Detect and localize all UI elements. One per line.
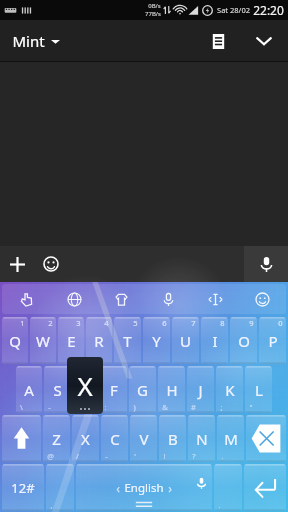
staticText: 2 [48,318,53,328]
staticText: K [225,380,235,400]
staticText: M [224,429,238,449]
staticText: S [53,380,62,400]
button[interactable]: C [101,415,128,462]
button[interactable]: S [44,366,70,413]
staticText: N [196,429,208,449]
staticText: + [76,402,81,412]
button[interactable]: Collapse [240,20,288,62]
staticText: Q [9,331,21,351]
staticText: - [48,402,51,412]
staticText: \ [20,402,23,412]
button[interactable]: Shift [2,415,41,462]
staticText: U [180,331,191,351]
staticText: B [168,429,178,449]
staticText: 8 [220,318,225,328]
button[interactable]: A [16,366,42,413]
staticText: ? [192,451,196,461]
staticText: # [191,402,196,412]
button[interactable]: Enter [244,464,286,511]
staticText: Mint [12,31,45,51]
staticText: O [238,331,250,351]
staticText: . [218,500,221,510]
staticText: C [110,429,120,449]
staticText: ; [220,402,223,412]
staticText: G [137,380,148,400]
button[interactable]: J [187,366,214,413]
staticText: : [104,402,107,412]
staticText: E [67,331,76,351]
staticText: L [255,380,263,400]
button[interactable]: Emoji [34,247,68,281]
staticText: 3 [76,318,81,328]
button[interactable]: V [130,415,157,462]
staticText: , [50,500,53,510]
button[interactable]: P [259,317,286,364]
button[interactable]: W [30,317,56,364]
staticText: F [110,380,118,400]
button[interactable]: H [158,366,185,413]
button[interactable]: E [58,317,84,364]
button[interactable]: , [46,464,74,511]
button[interactable]: O [230,317,257,364]
staticText: English [124,480,164,496]
button[interactable]: Theme [2,284,50,314]
button[interactable]: M [217,415,244,462]
button[interactable]: D [72,366,98,413]
staticText: W [36,331,50,351]
button[interactable]: R [86,317,112,364]
staticText: R [94,331,104,351]
staticText: Z [52,429,61,449]
button[interactable]: 12# [2,464,44,511]
staticText: - [105,451,108,461]
button[interactable]: List [196,20,240,62]
staticText: 5 [133,318,138,328]
button[interactable]: G [129,366,156,413]
staticText: 12# [11,479,35,497]
button[interactable]: N [188,415,215,462]
staticText: ‹ [116,480,120,496]
staticText: X [77,368,93,403]
staticText: A [24,380,34,400]
button[interactable]: Mint [12,31,60,51]
staticText: . [221,451,224,461]
button[interactable]: B [159,415,186,462]
staticText: ! [163,451,166,461]
staticText: / [76,451,79,461]
button[interactable]: . [214,464,242,511]
button[interactable]: K [216,366,243,413]
button[interactable]: Language [50,284,98,314]
button[interactable]: U [172,317,199,364]
button[interactable]: Z [43,415,70,462]
button[interactable]: Y [143,317,170,364]
staticText: ) [133,402,136,412]
staticText: ' [134,451,136,461]
button[interactable]: Voice input [244,246,288,282]
button[interactable]: L [245,366,272,413]
staticText: 9 [249,318,254,328]
staticText: D [80,380,91,400]
button[interactable]: Add [0,247,34,281]
button[interactable]: Backspace [246,415,286,462]
button[interactable]: Shirt [98,284,145,314]
staticText: Sat 28/02 [217,5,250,15]
staticText: H [166,380,178,400]
staticText: 4 [104,318,109,328]
staticText: 22:20 [253,2,284,18]
staticText: 6 [162,318,167,328]
button[interactable]: F [100,366,127,413]
staticText: " [249,402,253,412]
button[interactable]: Voice [145,284,192,314]
staticText: 0B/s [148,2,161,10]
button[interactable]: X [72,415,99,462]
button[interactable]: Emoji [239,284,286,314]
button[interactable]: Cursor [192,284,239,314]
button[interactable]: T [114,317,141,364]
staticText: Y [152,331,161,351]
button[interactable]: I [201,317,228,364]
button[interactable]: Space [76,464,212,511]
staticText: 1 [20,318,25,328]
staticText: › [168,480,172,496]
staticText: & [162,402,168,412]
button[interactable]: Q [2,317,28,364]
staticText: P [268,331,278,351]
